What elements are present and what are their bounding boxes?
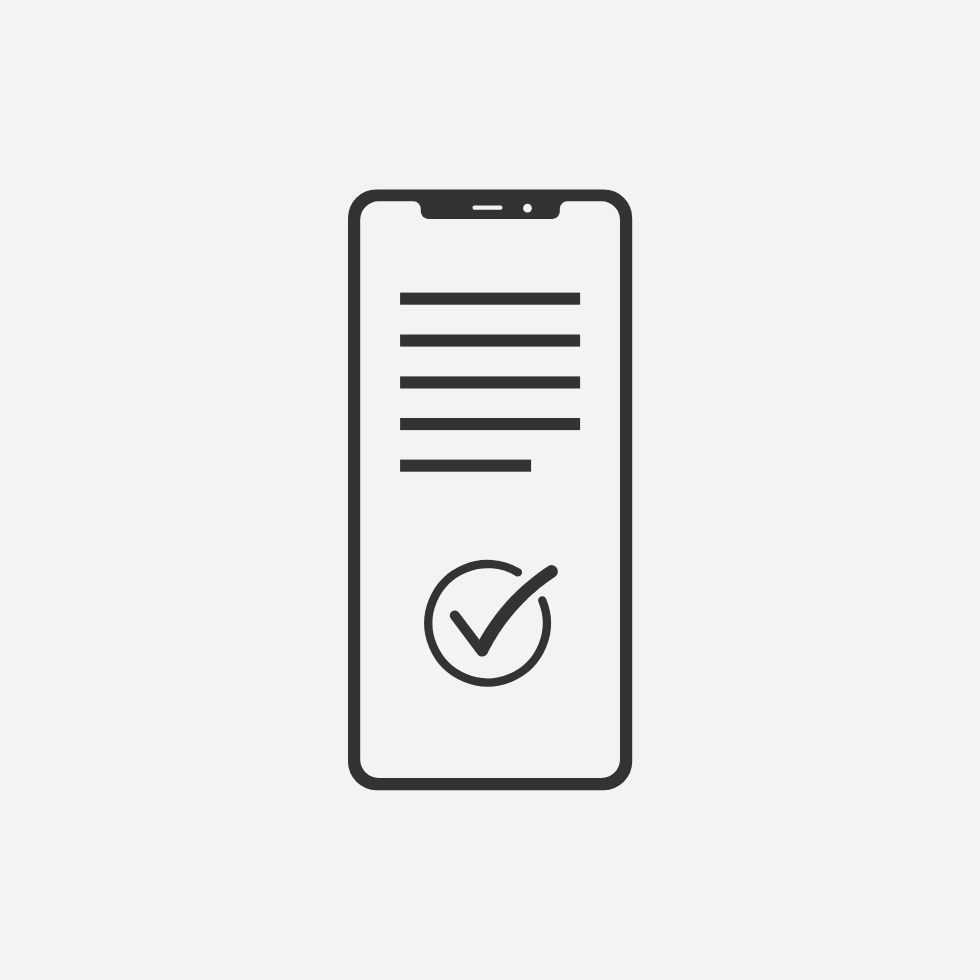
button[interactable]: Smartphone showing a completed checklist… (0, 0, 980, 980)
